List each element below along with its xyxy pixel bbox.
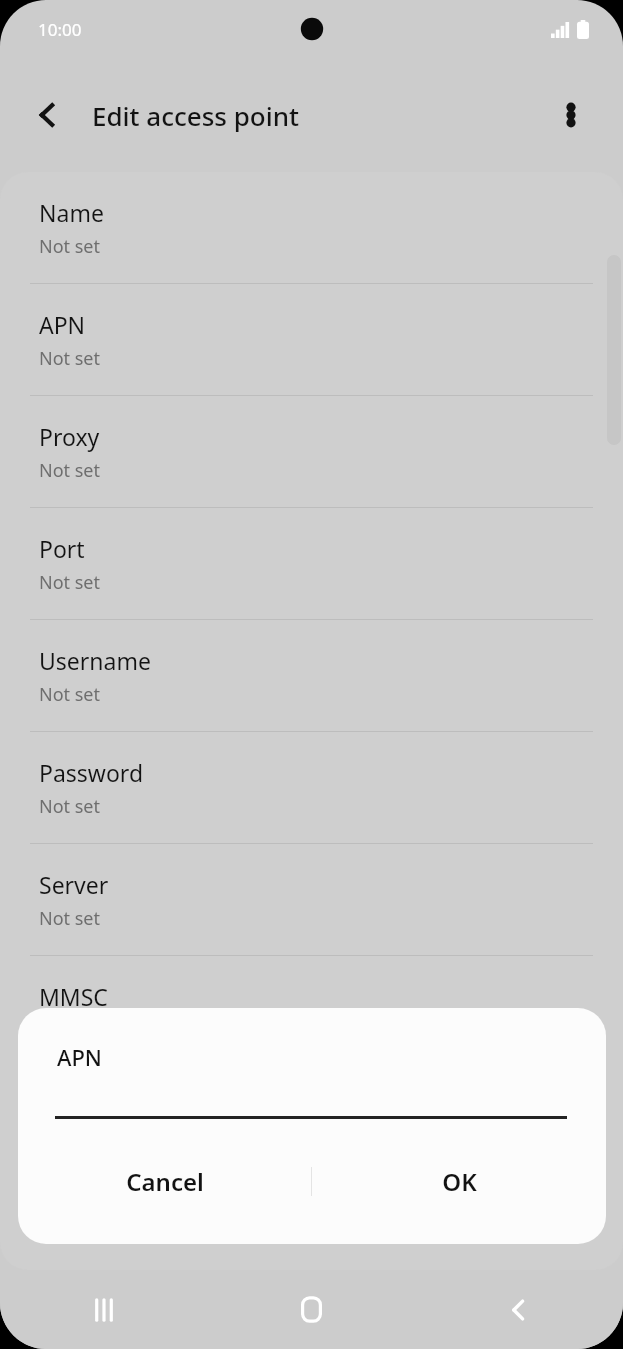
button[interactable]: Home (207, 1270, 415, 1349)
staticText: Edit access point (92, 98, 299, 133)
staticText: Password (39, 757, 144, 788)
button[interactable]: Cancel (18, 1151, 311, 1211)
staticText: Cancel (126, 1165, 204, 1198)
button[interactable]: OK (312, 1151, 606, 1211)
staticText: 10:00 (38, 18, 82, 41)
staticText: Port (39, 533, 85, 564)
button[interactable]: Username (0, 620, 623, 731)
button[interactable]: APN (0, 284, 623, 395)
staticText: Username (39, 645, 151, 676)
staticText: Not set (39, 906, 101, 931)
staticText: Not set (39, 570, 101, 595)
staticText: Proxy (39, 421, 100, 452)
staticText: Server (39, 869, 109, 900)
staticText: OK (442, 1165, 477, 1198)
button[interactable]: Recents (0, 1270, 207, 1349)
staticText: MMSC (39, 981, 108, 1012)
button[interactable]: Proxy (0, 396, 623, 507)
button[interactable]: MMS proxy (0, 1068, 623, 1179)
button[interactable]: Name (0, 172, 623, 283)
staticText: Not set (39, 346, 101, 371)
staticText: Not set (39, 794, 101, 819)
button[interactable]: Server (0, 844, 623, 955)
staticText: Not set (39, 458, 101, 483)
button[interactable]: Back (415, 1270, 623, 1349)
button[interactable]: Password (0, 732, 623, 843)
button[interactable]: Back (22, 89, 74, 141)
staticText: Not set (39, 682, 101, 707)
staticText: MMS proxy (39, 1093, 160, 1124)
staticText: Not set (39, 234, 101, 259)
staticText: APN (57, 1042, 102, 1072)
button[interactable]: MMSC (0, 956, 623, 1067)
button[interactable]: More options (545, 89, 597, 141)
staticText: Name (39, 197, 104, 228)
button[interactable]: Port (0, 508, 623, 619)
staticText: APN (39, 309, 86, 340)
